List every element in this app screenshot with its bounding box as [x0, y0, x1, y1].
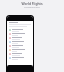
button[interactable] — [7, 36, 33, 40]
staticText: live departures board — [24, 6, 40, 8]
button[interactable] — [7, 56, 33, 60]
button[interactable] — [7, 44, 33, 48]
button[interactable] — [7, 28, 33, 32]
button[interactable] — [7, 40, 33, 44]
button[interactable] — [7, 48, 33, 52]
button[interactable] — [7, 32, 33, 36]
button[interactable] — [7, 52, 33, 56]
staticText: World Flights — [21, 1, 43, 5]
